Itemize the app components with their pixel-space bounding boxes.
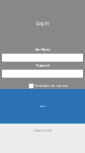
- staticText: Remember me next time: [35, 84, 68, 88]
- button[interactable]: Password lost?: [33, 129, 52, 133]
- staticText: User Name: [34, 48, 50, 52]
- button[interactable]: Remember me next time: [23, 84, 62, 88]
- staticText: Log in: [36, 20, 49, 27]
- staticText: Password: [35, 64, 49, 68]
- button[interactable]: Password: [0, 70, 85, 78]
- staticText: Password lost?: [33, 129, 52, 133]
- button[interactable]: Log in: [0, 89, 85, 123]
- button[interactable]: User Name: [0, 54, 85, 62]
- staticText: Log in: [39, 104, 45, 107]
